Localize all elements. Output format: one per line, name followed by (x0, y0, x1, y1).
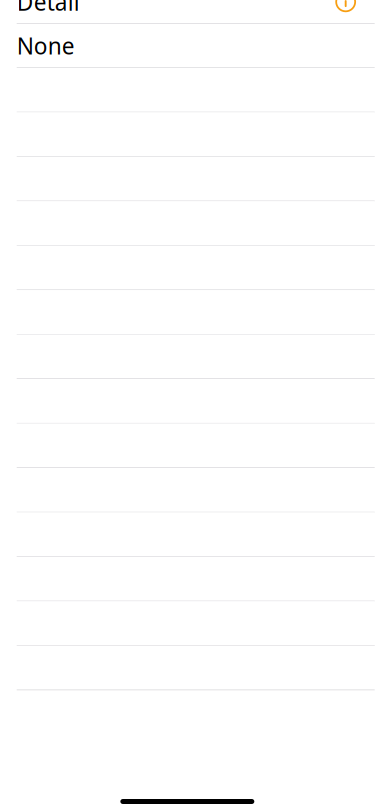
staticText: Detail (17, 0, 80, 17)
staticText: None (17, 31, 75, 61)
button[interactable]: None (0, 24, 375, 68)
button[interactable]: Detail (0, 0, 375, 24)
